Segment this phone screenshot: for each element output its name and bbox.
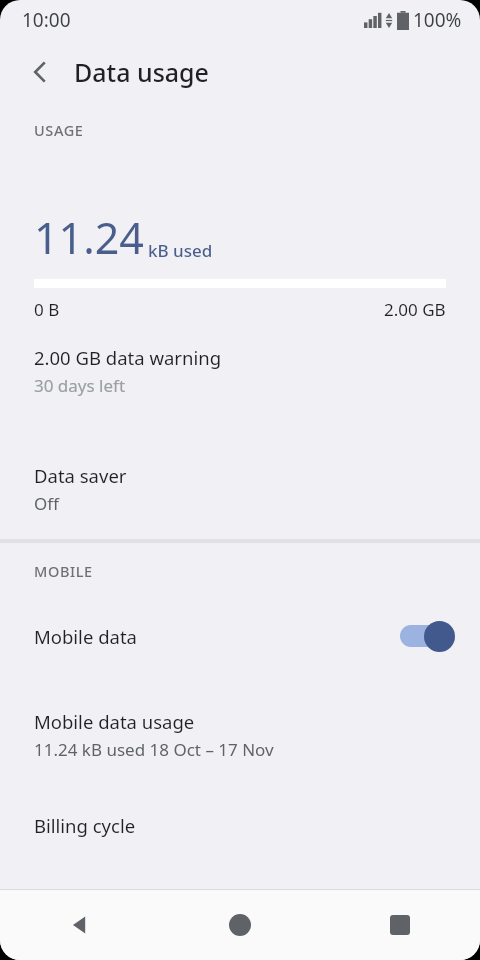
staticText: Billing cycle — [34, 813, 136, 838]
button[interactable]: Mobile data — [0, 615, 480, 657]
button[interactable]: Mobile data usage — [0, 707, 480, 763]
staticText: USAGE — [34, 120, 84, 140]
button[interactable]: Back — [16, 48, 64, 96]
staticText: 0 B — [34, 298, 60, 321]
staticText: Data saver — [34, 463, 127, 488]
button[interactable]: Data saver — [0, 461, 480, 517]
staticText: kB used — [148, 239, 213, 262]
staticText: 2.00 GB data warning — [34, 345, 222, 370]
staticText: 100% — [413, 7, 462, 33]
staticText: 10:00 — [22, 7, 71, 33]
button[interactable]: 2.00 GB data warning — [0, 343, 480, 399]
button[interactable]: Back — [0, 890, 160, 960]
staticText: 30 days left — [34, 374, 126, 397]
button[interactable]: Billing cycle — [0, 813, 480, 838]
other: Mobile data toggle — [398, 619, 456, 653]
staticText: Data usage — [74, 55, 209, 89]
button[interactable]: Recent apps — [320, 890, 480, 960]
staticText: 11.24 — [34, 208, 144, 267]
staticText: MOBILE — [34, 561, 93, 581]
staticText: Mobile data usage — [34, 709, 195, 734]
staticText: 2.00 GB — [384, 298, 446, 321]
staticText: Mobile data — [34, 624, 137, 649]
staticText: 11.24 kB used 18 Oct – 17 Nov — [34, 738, 274, 761]
button[interactable]: Home — [160, 890, 320, 960]
staticText: Off — [34, 492, 59, 515]
